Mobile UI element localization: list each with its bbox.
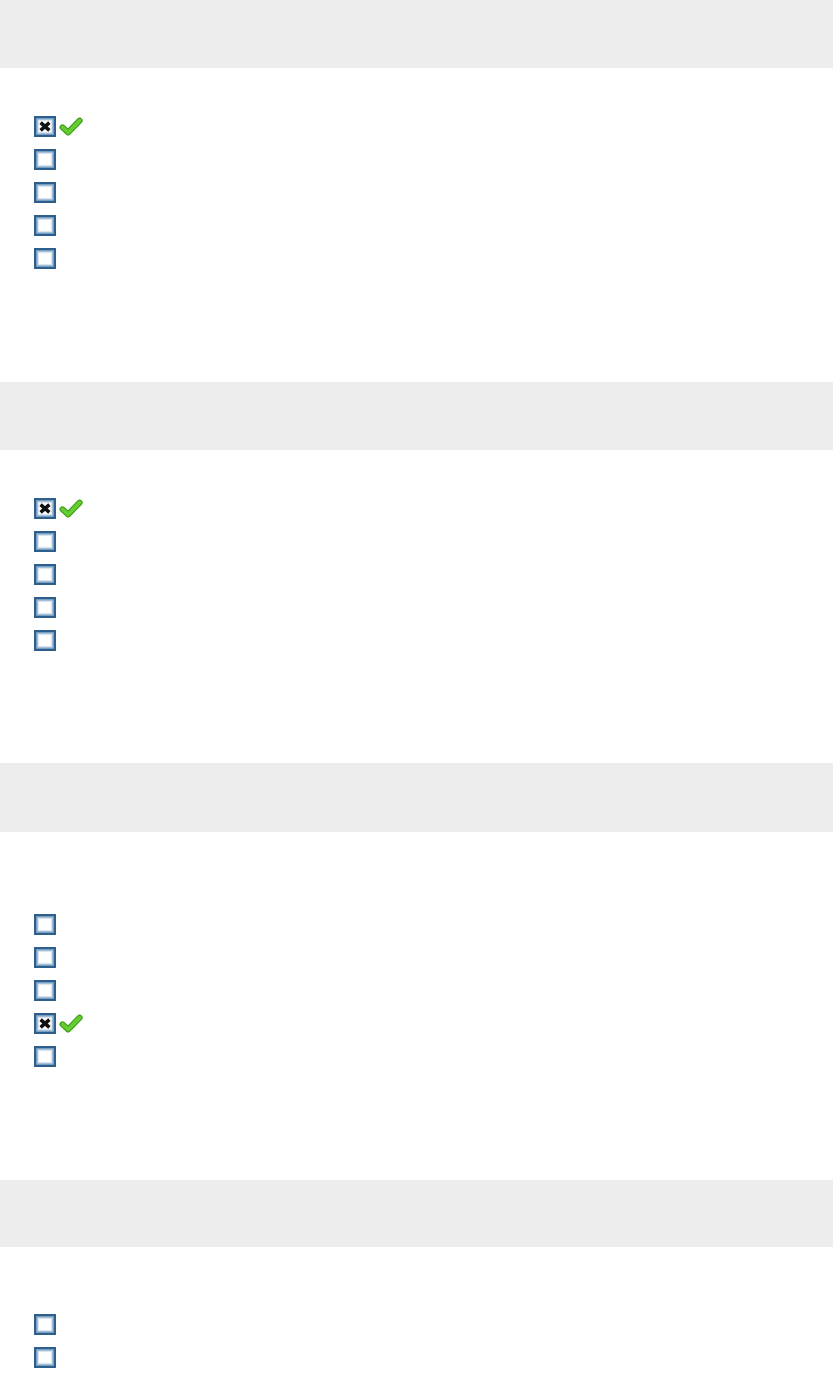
button[interactable]: Choice: [0, 908, 833, 941]
button[interactable]: Choice: [0, 558, 833, 591]
button[interactable]: Choice: [0, 624, 833, 657]
button[interactable]: Choice: [0, 176, 833, 209]
button[interactable]: Choice: [0, 242, 833, 275]
button[interactable]: Selected choice: [0, 492, 833, 525]
button[interactable]: Choice: [0, 209, 833, 242]
button[interactable]: Choice: [0, 941, 833, 974]
button[interactable]: Selected choice: [0, 1007, 833, 1040]
button[interactable]: Choice: [0, 1040, 833, 1073]
button[interactable]: Choice: [0, 974, 833, 1007]
button[interactable]: Choice: [0, 591, 833, 624]
button[interactable]: Choice: [0, 525, 833, 558]
button[interactable]: Choice: [0, 1341, 833, 1374]
button[interactable]: Choice: [0, 143, 833, 176]
button[interactable]: Choice: [0, 1308, 833, 1341]
button[interactable]: Selected choice: [0, 110, 833, 143]
